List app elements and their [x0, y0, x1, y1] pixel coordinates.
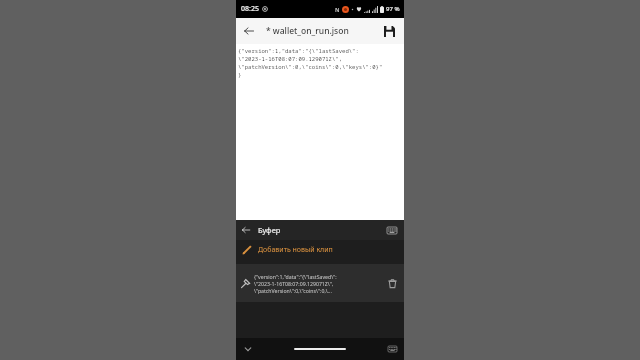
staticText: \"2023-1-16T08:07:09.129071Z\",	[254, 280, 334, 287]
button[interactable]: Hide keyboard	[240, 341, 256, 357]
staticText: \"2023-1-16T08:07:09.129071Z\",	[238, 55, 343, 63]
staticText: * wallet_on_run.json	[266, 25, 376, 37]
staticText: {"version":1,"data":"{\"lastSaved\":	[238, 47, 359, 55]
button[interactable]: Back	[236, 18, 262, 44]
staticText: }	[238, 71, 242, 79]
staticText: {"version":1,"data":"{\"lastSaved\":	[254, 273, 337, 280]
staticText: 08:25	[241, 4, 259, 14]
staticText: Буфер	[258, 225, 382, 235]
button[interactable]: Home	[294, 348, 346, 350]
staticText: Добавить новый клип	[258, 245, 333, 255]
button[interactable]: Delete clip	[382, 273, 402, 293]
button[interactable]: {"version":1,"data":"{\"lastSaved\":	[236, 44, 404, 220]
staticText: N	[335, 6, 340, 13]
button[interactable]: Pin clip	[236, 274, 254, 292]
button[interactable]: Keyboard	[382, 220, 402, 240]
button[interactable]: Добавить новый клип	[236, 240, 404, 260]
button[interactable]: Back	[236, 220, 256, 240]
staticText: \"patchVersion\":0,\"coins\":0,\"keys\":…	[238, 63, 383, 71]
staticText: \"patchVersion\":0,\"coins\":0,\...	[254, 287, 332, 294]
button[interactable]: Pin clip	[236, 264, 404, 302]
staticText: 97 %	[386, 5, 400, 13]
button[interactable]: Save	[376, 18, 402, 44]
button[interactable]: Switch keyboard	[384, 341, 400, 357]
